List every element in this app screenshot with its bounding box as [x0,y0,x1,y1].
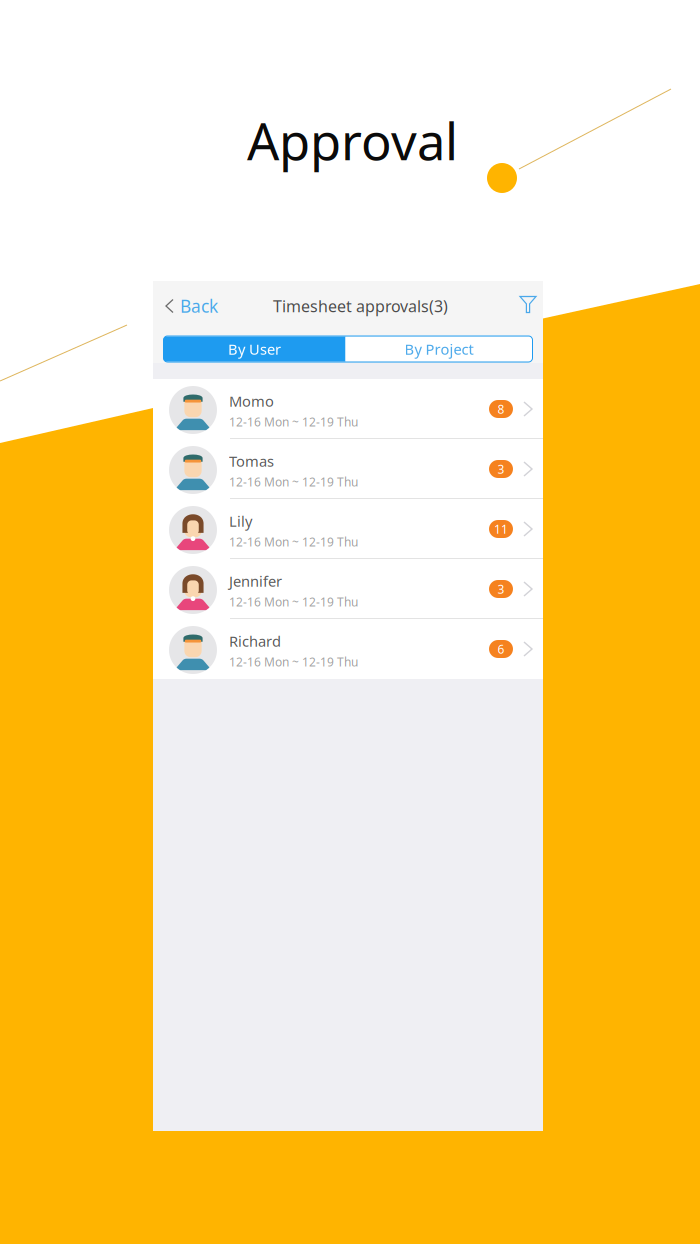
staticText: Back [180,294,218,317]
button[interactable]: Tomas [153,439,543,499]
staticText: 12-16 Mon ~ 12-19 Thu [229,594,358,610]
staticText: Tomas [229,451,274,471]
staticText: By Project [404,339,473,359]
staticText: 3 [497,461,504,477]
button[interactable]: Lily [153,499,543,559]
staticText: 12-16 Mon ~ 12-19 Thu [229,414,358,430]
staticText: Timesheet approvals(3) [273,295,448,317]
staticText: Richard [229,631,281,651]
staticText: By User [228,339,281,359]
staticText: 6 [497,641,504,657]
staticText: 12-16 Mon ~ 12-19 Thu [229,534,358,550]
staticText: 8 [497,401,504,417]
button[interactable]: Filter [510,286,543,322]
button[interactable]: Richard [153,619,543,679]
staticText: 3 [497,581,504,597]
button[interactable]: Momo [153,379,543,439]
staticText: Lily [229,511,252,531]
staticText: 12-16 Mon ~ 12-19 Thu [229,654,358,670]
button[interactable]: By User [163,336,345,361]
staticText: Momo [229,391,274,411]
button[interactable]: Back [153,280,218,328]
staticText: Jennifer [229,571,282,591]
button[interactable]: By Project [345,336,532,361]
staticText: 11 [494,521,508,537]
staticText: 12-16 Mon ~ 12-19 Thu [229,474,358,490]
button[interactable]: Jennifer [153,559,543,619]
staticText: Approval [247,107,458,174]
